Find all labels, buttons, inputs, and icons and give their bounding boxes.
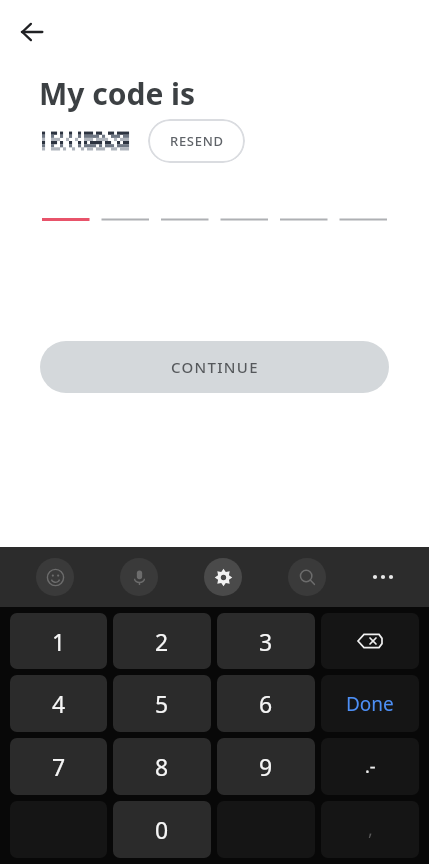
- button[interactable]: Done: [321, 675, 419, 732]
- button[interactable]: 3: [217, 613, 315, 669]
- button[interactable]: .-: [321, 738, 419, 795]
- staticText: 8: [155, 751, 169, 782]
- button[interactable]: Voice input: [97, 547, 181, 607]
- button[interactable]: Settings: [181, 547, 265, 607]
- staticText: 1: [52, 626, 66, 657]
- button[interactable]: 8: [113, 738, 211, 795]
- staticText: RESEND: [170, 132, 224, 150]
- button[interactable]: Back: [10, 10, 54, 54]
- button[interactable]: Backspace: [321, 613, 419, 669]
- button[interactable]: Search: [265, 547, 349, 607]
- staticText: 9: [259, 751, 273, 782]
- staticText: .-: [365, 754, 376, 779]
- button[interactable]: More options: [349, 547, 417, 607]
- button[interactable]: 5: [113, 675, 211, 732]
- button[interactable]: 2: [113, 613, 211, 669]
- button[interactable]: 4: [10, 675, 107, 732]
- staticText: 7: [52, 751, 66, 782]
- button[interactable]: 7: [10, 738, 107, 795]
- button[interactable]: 0: [113, 801, 211, 858]
- staticText: 5: [155, 688, 169, 719]
- staticText: ,: [368, 817, 373, 842]
- staticText: My code is: [39, 73, 196, 114]
- button[interactable]: CONTINUE: [40, 341, 389, 393]
- staticText: 2: [155, 626, 169, 657]
- staticText: Done: [346, 691, 394, 717]
- staticText: 6: [259, 688, 273, 719]
- staticText: 3: [259, 626, 273, 657]
- staticText: 0: [155, 814, 169, 845]
- button[interactable]: Emoji: [12, 547, 97, 607]
- staticText: CONTINUE: [171, 357, 259, 377]
- staticText: 4: [52, 688, 66, 719]
- button[interactable]: 1: [10, 613, 107, 669]
- button[interactable]: 6: [217, 675, 315, 732]
- button[interactable]: 9: [217, 738, 315, 795]
- button[interactable]: RESEND: [148, 119, 245, 163]
